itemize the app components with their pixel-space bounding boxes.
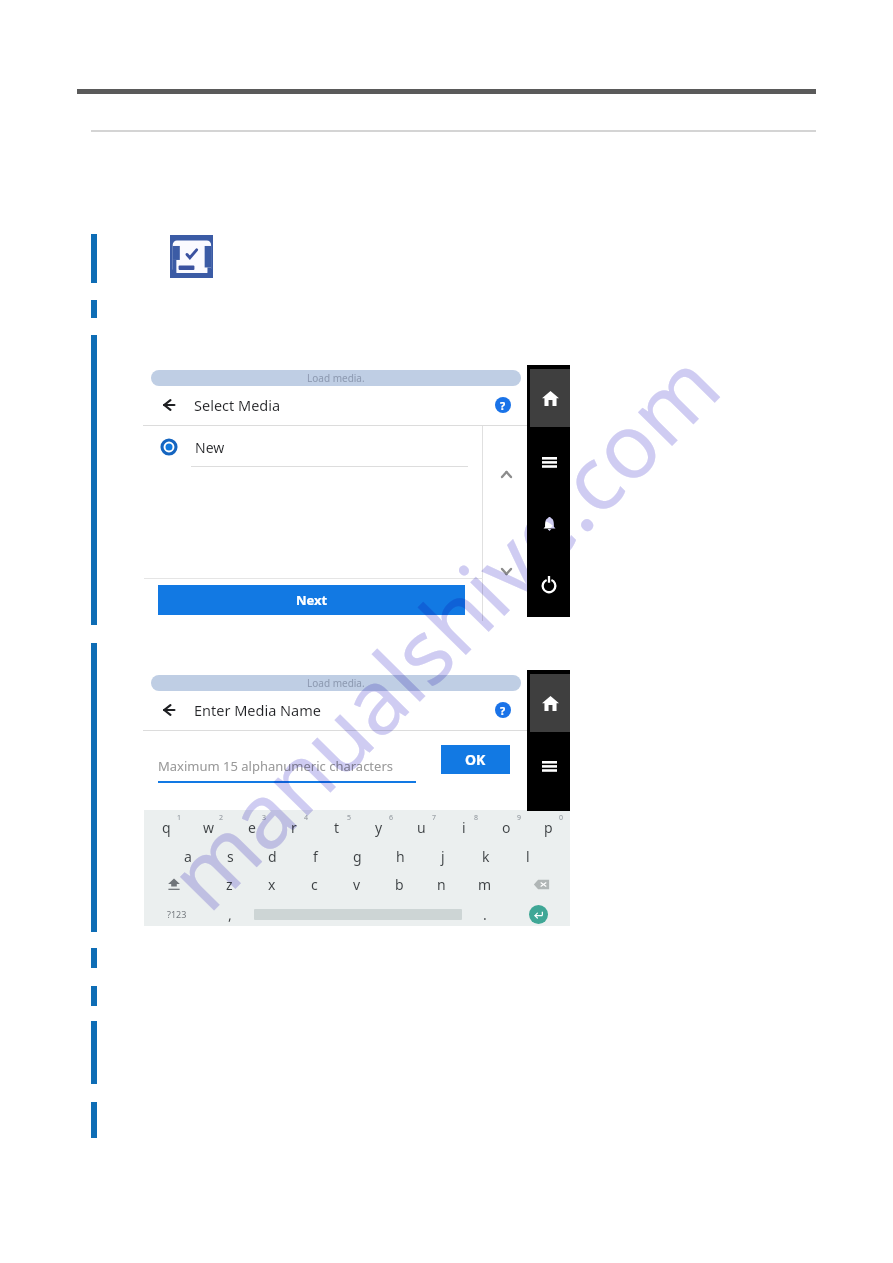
button[interactable]: Notifications: [536, 511, 562, 537]
button[interactable]: Back: [151, 692, 187, 728]
staticText: f: [313, 847, 318, 866]
button[interactable]: Space: [254, 900, 462, 928]
staticText: 1: [177, 813, 182, 823]
staticText: o: [502, 818, 511, 837]
staticText: OK: [465, 750, 486, 769]
staticText: 8: [474, 813, 479, 823]
staticText: 6: [389, 813, 394, 823]
staticText: r: [291, 818, 297, 837]
staticText: m: [478, 875, 492, 894]
staticText: Enter Media Name: [194, 700, 321, 720]
staticText: ,: [228, 905, 232, 924]
staticText: Next: [296, 591, 328, 609]
staticText: l: [526, 847, 530, 866]
staticText: 4: [304, 813, 309, 823]
button[interactable]: Symbols: [149, 900, 205, 928]
button[interactable]: ,: [210, 900, 250, 928]
staticText: z: [226, 875, 233, 894]
staticText: ?123: [167, 908, 187, 920]
staticText: Load media.: [307, 371, 365, 385]
button[interactable]: a: [166, 842, 209, 871]
staticText: 3: [262, 813, 267, 823]
staticText: Maximum 15 alphanumeric characters: [158, 757, 393, 775]
button[interactable]: Back: [151, 387, 187, 423]
button[interactable]: c: [293, 870, 336, 899]
staticText: t: [334, 818, 340, 837]
button[interactable]: n: [420, 870, 463, 899]
button[interactable]: y: [357, 813, 400, 842]
button[interactable]: Help: [485, 387, 520, 422]
staticText: k: [482, 847, 490, 866]
staticText: ?: [500, 398, 506, 413]
button[interactable]: Enter: [513, 900, 563, 928]
button[interactable]: h: [379, 842, 422, 871]
button[interactable]: d: [251, 842, 294, 871]
staticText: u: [417, 818, 426, 837]
staticText: g: [353, 847, 362, 866]
staticText: v: [353, 875, 361, 894]
staticText: 5: [347, 813, 352, 823]
button[interactable]: o: [485, 813, 528, 842]
staticText: j: [441, 847, 445, 866]
button[interactable]: g: [336, 842, 379, 871]
staticText: q: [162, 818, 171, 837]
button[interactable]: OK: [441, 745, 510, 774]
staticText: 2: [219, 813, 224, 823]
button[interactable]: e: [230, 813, 273, 842]
button[interactable]: p: [527, 813, 570, 842]
staticText: p: [544, 818, 553, 837]
staticText: h: [396, 847, 405, 866]
button[interactable]: b: [378, 870, 421, 899]
staticText: Select Media: [194, 395, 281, 415]
staticText: a: [184, 847, 192, 866]
button[interactable]: q: [145, 813, 188, 842]
staticText: d: [268, 847, 277, 866]
button[interactable]: Scroll up: [496, 464, 516, 484]
button[interactable]: i: [442, 813, 485, 842]
button[interactable]: Home: [537, 385, 563, 411]
staticText: e: [248, 818, 256, 837]
staticText: 9: [517, 813, 522, 823]
button[interactable]: Menu: [536, 753, 562, 779]
staticText: b: [395, 875, 404, 894]
staticText: c: [311, 875, 318, 894]
button[interactable]: f: [294, 842, 337, 871]
button[interactable]: Home: [537, 690, 563, 716]
button[interactable]: Menu: [536, 449, 562, 475]
staticText: w: [203, 818, 215, 837]
button[interactable]: Next: [158, 585, 465, 615]
button[interactable]: k: [464, 842, 507, 871]
button[interactable]: Help: [485, 692, 520, 727]
button[interactable]: r: [272, 813, 315, 842]
button[interactable]: m: [463, 870, 506, 899]
button[interactable]: u: [400, 813, 443, 842]
staticText: n: [437, 875, 446, 894]
button[interactable]: Backspace: [516, 870, 566, 898]
button[interactable]: v: [335, 870, 378, 899]
staticText: .: [483, 905, 487, 924]
button[interactable]: w: [187, 813, 230, 842]
button[interactable]: t: [315, 813, 358, 842]
staticText: s: [227, 847, 234, 866]
staticText: i: [462, 818, 466, 837]
button[interactable]: Shift: [149, 870, 199, 898]
staticText: x: [268, 875, 276, 894]
button[interactable]: Power: [536, 571, 562, 597]
button[interactable]: l: [506, 842, 549, 871]
staticText: Load media.: [307, 676, 365, 690]
staticText: New: [195, 438, 225, 457]
button[interactable]: j: [421, 842, 464, 871]
button[interactable]: .: [465, 900, 505, 928]
button[interactable]: s: [209, 842, 252, 871]
button[interactable]: Scroll down: [496, 561, 516, 581]
button[interactable]: z: [208, 870, 251, 899]
staticText: 7: [432, 813, 437, 823]
staticText: y: [375, 818, 383, 837]
staticText: 0: [559, 813, 564, 823]
staticText: ?: [500, 703, 506, 718]
button[interactable]: x: [250, 870, 293, 899]
